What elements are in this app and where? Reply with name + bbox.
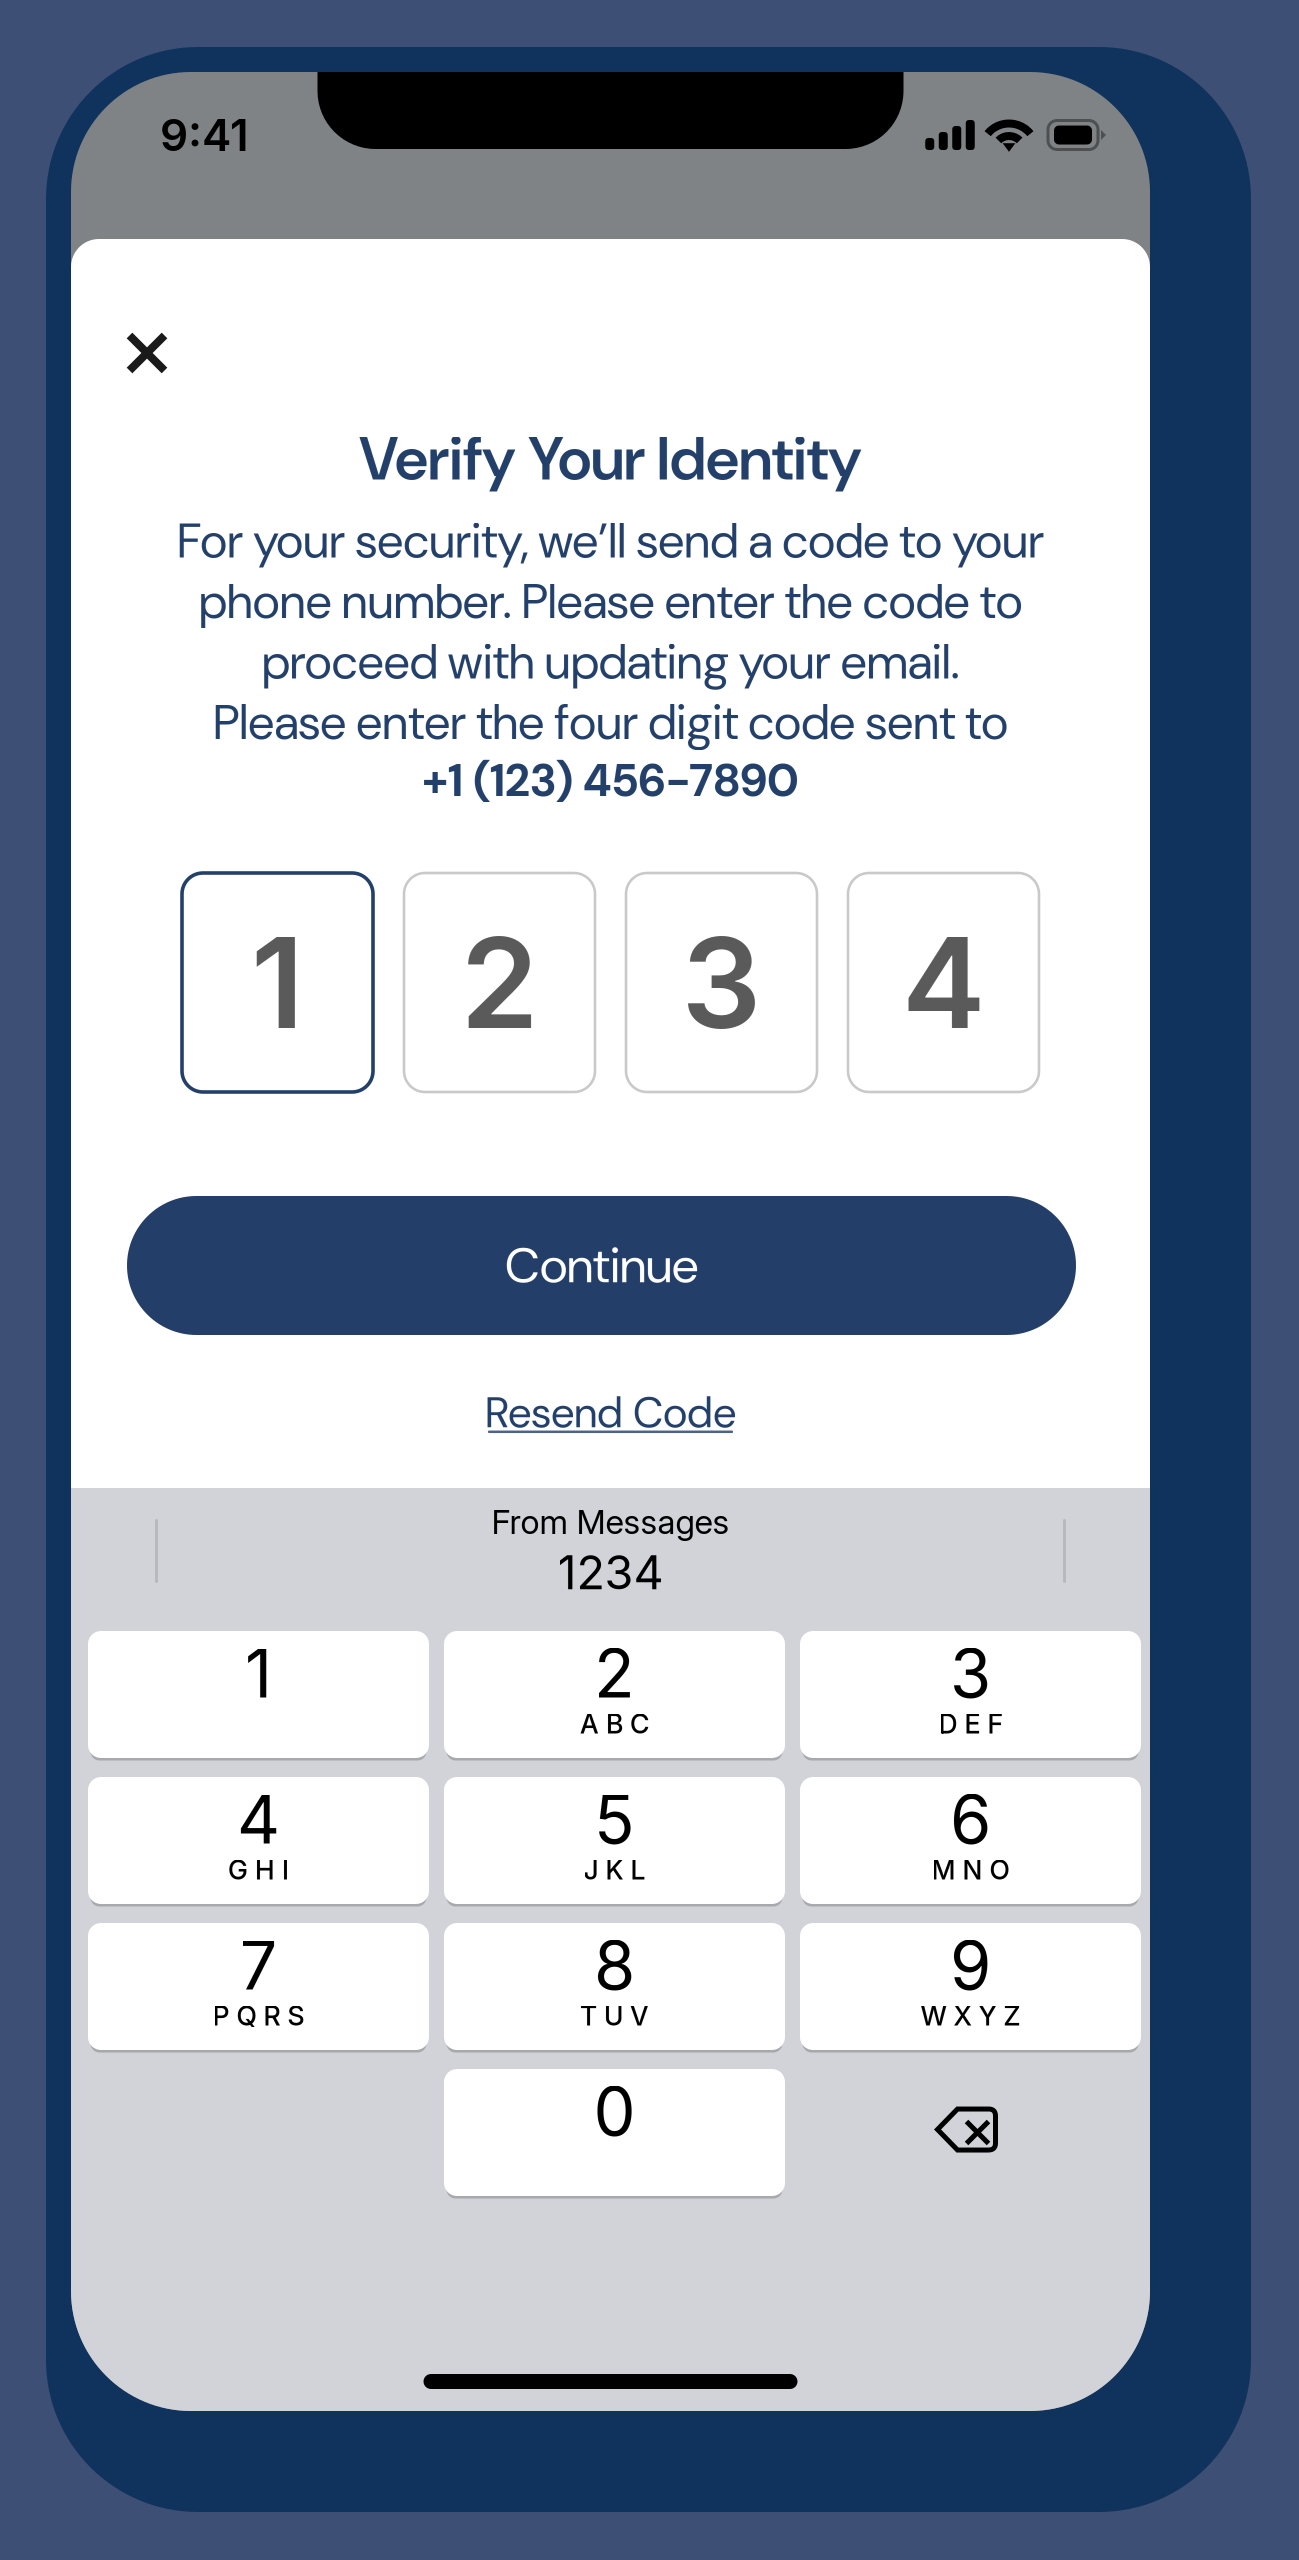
staticText: 3	[681, 907, 761, 1058]
button[interactable]: Digit 1	[182, 873, 373, 1092]
button[interactable]: Close	[104, 310, 190, 396]
staticText: 2	[594, 1633, 635, 1714]
button[interactable]: 0	[444, 2069, 785, 2196]
button[interactable]: 5	[444, 1777, 785, 1904]
button[interactable]: 7	[88, 1923, 429, 2050]
staticText: 4	[902, 907, 985, 1058]
staticText: +1 (123) 456-7890	[422, 751, 799, 810]
button[interactable]: 2	[444, 1631, 785, 1758]
button[interactable]: 6	[800, 1777, 1141, 1904]
staticText: 6	[950, 1779, 991, 1860]
button[interactable]: Resend Code	[469, 1375, 752, 1443]
staticText: T U V	[580, 2000, 649, 2032]
button[interactable]: 8	[444, 1923, 785, 2050]
staticText: 1	[251, 907, 304, 1058]
staticText: From Messages	[491, 1502, 729, 1542]
staticText: 2	[460, 907, 538, 1058]
staticText: A B C	[580, 1708, 649, 1740]
button[interactable]: Digit 2	[404, 873, 595, 1092]
staticText: 0	[593, 2071, 635, 2152]
staticText: Resend Code	[485, 1385, 736, 1441]
staticText: W X Y Z	[920, 2000, 1020, 2032]
button[interactable]: Digit 4	[848, 873, 1039, 1092]
staticText: 4	[237, 1779, 280, 1860]
button[interactable]: 1	[88, 1631, 429, 1758]
staticText: For your security, we’ll send a code to …	[177, 510, 1044, 754]
staticText: Verify Your Identity	[359, 420, 862, 498]
button[interactable]: 3	[800, 1631, 1141, 1758]
staticText: 5	[594, 1779, 635, 1860]
staticText: G H I	[228, 1854, 289, 1886]
staticText: 1234	[557, 1544, 663, 1600]
staticText: 1	[245, 1633, 272, 1714]
staticText: 9	[950, 1925, 991, 2006]
button[interactable]: Digit 3	[626, 873, 817, 1092]
staticText: M N O	[931, 1854, 1009, 1886]
button[interactable]: Delete	[800, 2069, 1141, 2196]
staticText: 7	[239, 1925, 277, 2006]
button[interactable]: Continue	[127, 1196, 1076, 1335]
staticText: P Q R S	[212, 2000, 304, 2032]
staticText: 8	[594, 1925, 635, 2006]
button[interactable]: 9	[800, 1923, 1141, 2050]
staticText: 9:41	[160, 108, 249, 162]
staticText: D E F	[938, 1708, 1002, 1740]
staticText: J K L	[583, 1854, 645, 1886]
staticText: 3	[950, 1633, 991, 1714]
button[interactable]: 4	[88, 1777, 429, 1904]
staticText: Continue	[505, 1233, 698, 1298]
